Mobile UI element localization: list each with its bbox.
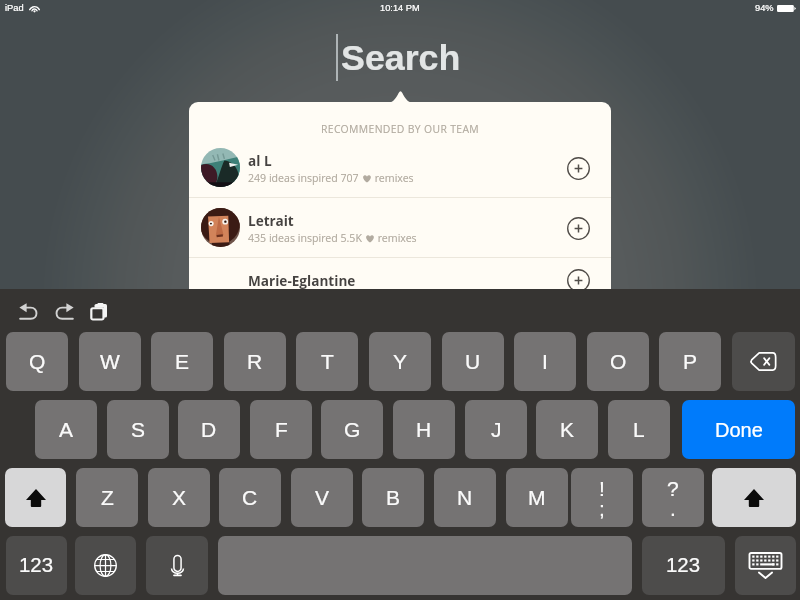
button[interactable]: Redo: [49, 300, 79, 322]
staticText: R: [247, 350, 263, 373]
staticText: A: [59, 418, 74, 441]
staticText: iPad: [5, 3, 24, 13]
button[interactable]: D: [178, 400, 240, 459]
button[interactable]: Hide keyboard: [735, 536, 796, 595]
staticText: Y: [393, 350, 408, 373]
button[interactable]: H: [393, 400, 455, 459]
staticText: ;: [599, 497, 605, 520]
button[interactable]: Shift: [712, 468, 796, 527]
staticText: Done: [715, 419, 763, 441]
button[interactable]: O: [587, 332, 649, 391]
button[interactable]: Dictate: [146, 536, 208, 595]
staticText: I: [542, 350, 548, 373]
button[interactable]: ?: [642, 468, 704, 527]
button[interactable]: L: [608, 400, 670, 459]
button[interactable]: !: [571, 468, 633, 527]
staticText: W: [100, 350, 120, 373]
button[interactable]: E: [151, 332, 213, 391]
staticText: Z: [101, 486, 114, 509]
button[interactable]: Done: [682, 400, 795, 459]
staticText: remixes: [372, 171, 414, 185]
button[interactable]: X: [148, 468, 210, 527]
button[interactable]: S: [107, 400, 169, 459]
staticText: E: [175, 350, 190, 373]
staticText: 435 ideas inspired 5.5K: [248, 231, 365, 245]
staticText: O: [610, 350, 627, 373]
button[interactable]: 123: [642, 536, 725, 595]
button[interactable]: Copy: [87, 300, 111, 322]
staticText: P: [683, 350, 698, 373]
button[interactable]: K: [536, 400, 598, 459]
button[interactable]: A: [35, 400, 97, 459]
staticText: 10:14 PM: [380, 3, 420, 13]
staticText: X: [172, 486, 187, 509]
staticText: M: [528, 486, 546, 509]
button[interactable]: U: [442, 332, 504, 391]
button[interactable]: Undo: [13, 300, 43, 322]
staticText: Q: [29, 350, 46, 373]
staticText: G: [344, 418, 361, 441]
button[interactable]: Follow Marie-Eglantine: [565, 267, 591, 293]
button[interactable]: Z: [76, 468, 138, 527]
staticText: U: [465, 350, 481, 373]
staticText: 249 ideas inspired 707: [248, 171, 362, 185]
staticText: Search: [341, 38, 461, 78]
staticText: al L: [248, 151, 272, 170]
staticText: Letrait: [248, 211, 294, 230]
button[interactable]: W: [79, 332, 141, 391]
button[interactable]: Letrait: [189, 198, 611, 257]
button[interactable]: N: [434, 468, 496, 527]
button[interactable]: V: [291, 468, 353, 527]
staticText: H: [416, 418, 432, 441]
staticText: S: [131, 418, 146, 441]
button[interactable]: P: [659, 332, 721, 391]
staticText: T: [321, 350, 334, 373]
staticText: .: [670, 497, 676, 520]
staticText: D: [201, 418, 217, 441]
button[interactable]: Y: [369, 332, 431, 391]
button[interactable]: R: [224, 332, 286, 391]
button[interactable]: G: [321, 400, 383, 459]
staticText: !: [599, 477, 605, 500]
staticText: 123: [19, 554, 54, 577]
button[interactable]: Follow Letrait: [565, 215, 591, 241]
button[interactable]: C: [219, 468, 281, 527]
button[interactable]: F: [250, 400, 312, 459]
staticText: C: [242, 486, 258, 509]
staticText: N: [457, 486, 473, 509]
button[interactable]: Follow al L: [565, 155, 591, 181]
button[interactable]: I: [514, 332, 576, 391]
button[interactable]: T: [296, 332, 358, 391]
staticText: 94%: [755, 3, 774, 13]
button[interactable]: J: [465, 400, 527, 459]
staticText: 123: [666, 554, 701, 577]
staticText: F: [275, 418, 288, 441]
button[interactable]: Backspace: [732, 332, 795, 391]
button[interactable]: B: [362, 468, 424, 527]
staticText: L: [633, 418, 645, 441]
staticText: K: [560, 418, 575, 441]
staticText: B: [386, 486, 401, 509]
button[interactable]: Shift: [5, 468, 66, 527]
button[interactable]: Change language: [75, 536, 136, 595]
button[interactable]: 123: [6, 536, 67, 595]
button[interactable]: al L: [189, 138, 611, 197]
staticText: remixes: [375, 231, 417, 245]
button[interactable]: Marie-Eglantine: [189, 258, 611, 302]
button[interactable]: Q: [6, 332, 68, 391]
staticText: V: [315, 486, 330, 509]
staticText: Marie-Eglantine: [248, 271, 356, 290]
button[interactable]: M: [506, 468, 568, 527]
staticText: ?: [667, 477, 679, 500]
staticText: RECOMMENDED BY OUR TEAM: [321, 122, 480, 136]
staticText: J: [491, 418, 502, 441]
